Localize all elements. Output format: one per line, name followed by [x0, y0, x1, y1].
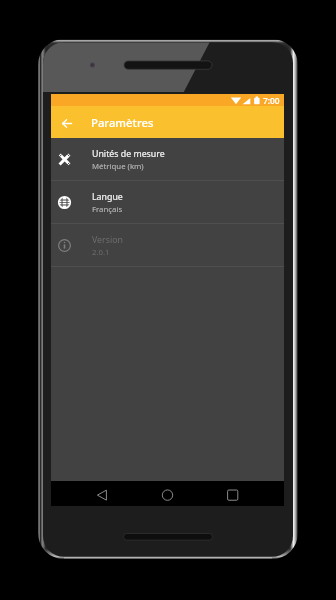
button[interactable]: Langue	[51, 181, 284, 223]
staticText: 2.0.1	[92, 247, 110, 258]
staticText: Version	[92, 234, 123, 246]
staticText: Français	[92, 204, 123, 215]
button[interactable]: Back	[51, 106, 82, 138]
staticText: Unités de mesure	[92, 148, 165, 160]
staticText: 7:00	[263, 95, 280, 106]
staticText: Langue	[92, 191, 123, 203]
staticText: Métrique (km)	[92, 161, 144, 172]
button[interactable]: Unités de mesure	[51, 138, 284, 180]
staticText: Paramètres	[91, 115, 154, 130]
button[interactable]: Version	[51, 224, 284, 266]
